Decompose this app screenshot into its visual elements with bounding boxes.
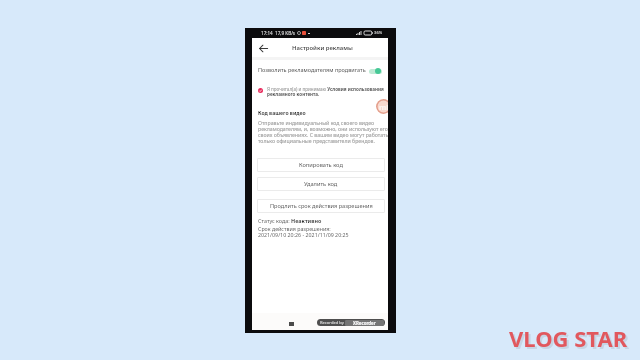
button[interactable]: Recents	[284, 317, 298, 330]
staticText: Статус кода: Неактивно	[258, 217, 322, 224]
staticText: Срок действия разрешения: 2021/09/10 20:…	[258, 225, 349, 239]
staticText: VLOG STAR	[511, 325, 630, 355]
staticText: Я прочитал(а) и принимаю Условия использ…	[267, 86, 384, 97]
staticText: Код вашего видео	[258, 110, 306, 117]
staticText: 17:14	[261, 30, 273, 36]
staticText: Копировать код	[299, 161, 343, 169]
staticText: Настройки рекламы	[292, 44, 353, 52]
button[interactable]: Удалить код	[257, 177, 385, 191]
staticText: Удалить код	[304, 180, 338, 188]
staticText: 17,9 KB/s	[275, 30, 296, 36]
staticText: Отправьте индивидуальный код своего виде…	[258, 119, 388, 144]
staticText: Продлить срок действия разрешения	[270, 202, 373, 210]
button[interactable]: Back	[256, 41, 270, 55]
staticText: XRecorder	[353, 320, 376, 326]
staticText: mi	[379, 102, 388, 112]
button[interactable]: Позволить рекламодателям продвигать	[252, 61, 388, 77]
staticText: Позволить рекламодателям продвигать	[258, 66, 366, 73]
staticText: Recorded by	[320, 320, 344, 326]
button[interactable]: Продлить срок действия разрешения	[257, 199, 385, 213]
button[interactable]: Я прочитал(а) и принимаю Условия использ…	[252, 84, 388, 98]
button[interactable]: Копировать код	[257, 158, 385, 172]
staticText: VLOG STAR	[509, 323, 628, 353]
staticText: 36%	[374, 30, 383, 36]
